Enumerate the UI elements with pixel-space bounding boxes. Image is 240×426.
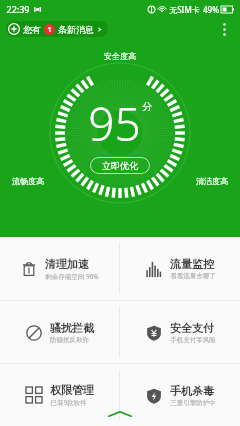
staticText: 流量监控 <box>170 257 214 271</box>
other: Permissions <box>26 387 42 403</box>
staticText: 安全支付 <box>170 321 214 335</box>
button[interactable]: More options <box>212 18 236 40</box>
staticText: 您有 <box>23 24 41 35</box>
staticText: 无SIM卡 <box>169 4 200 15</box>
staticText: 防骚扰反欺诈 <box>50 336 89 344</box>
staticText: 清洁度高 <box>196 176 228 186</box>
staticText: 条新消息 <box>58 24 94 35</box>
button[interactable]: Data monitor <box>120 237 240 300</box>
other: Clean <box>21 261 37 277</box>
staticText: 95 <box>88 92 141 155</box>
staticText: 剩余存储空间 96% <box>45 272 99 281</box>
staticText: 49% <box>203 4 219 15</box>
button[interactable]: Secure payment <box>120 301 240 363</box>
other: Secure payment <box>146 325 162 341</box>
staticText: 22:39 <box>6 3 30 15</box>
staticText: 手机杀毒 <box>170 384 214 398</box>
button[interactable]: Clean <box>0 237 119 300</box>
staticText: 看看流量去哪了 <box>170 272 216 280</box>
staticText: 权限管理 <box>50 383 94 397</box>
staticText: 立即优化 <box>102 160 138 171</box>
button[interactable]: Antivirus <box>120 364 240 426</box>
staticText: 三重引擎防护中 <box>170 399 216 407</box>
staticText: 分 <box>142 100 152 113</box>
staticText: 1 <box>47 25 52 35</box>
other: Antivirus <box>146 388 162 404</box>
staticText: 手机支付零风险 <box>170 336 216 344</box>
button[interactable]: Permissions <box>0 364 119 426</box>
staticText: 安全度高 <box>104 51 136 61</box>
staticText: 骚扰拦截 <box>50 321 94 335</box>
button[interactable]: 您有 <box>6 21 108 37</box>
other: Data monitor <box>146 261 162 277</box>
staticText: 已装9款软件 <box>50 398 87 407</box>
button[interactable]: 立即优化 <box>90 157 150 174</box>
other: Block harassment <box>26 325 42 341</box>
staticText: 流畅度高 <box>12 176 44 186</box>
button[interactable]: Block harassment <box>0 301 119 363</box>
staticText: 清理加速 <box>45 257 89 271</box>
